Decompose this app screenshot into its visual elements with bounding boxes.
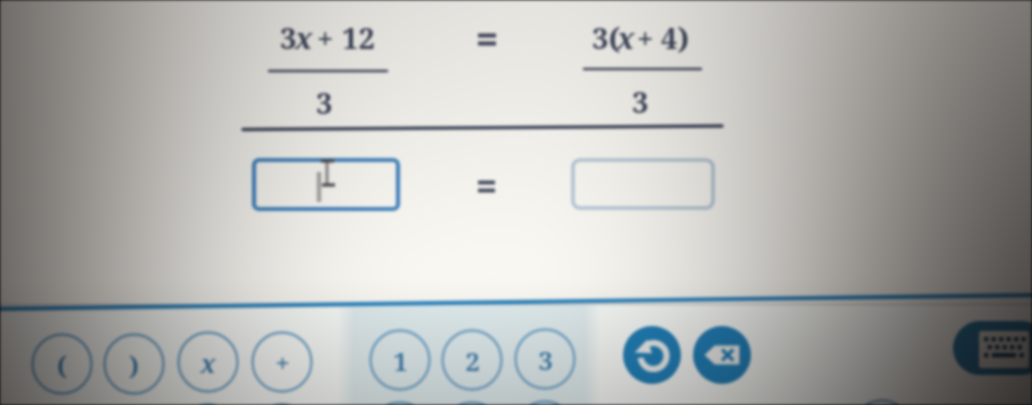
button[interactable]: ( — [31, 333, 93, 395]
staticText: 3( — [592, 18, 621, 57]
button[interactable] — [252, 158, 400, 211]
staticText: + — [317, 18, 334, 57]
button[interactable]: 1 — [369, 329, 431, 391]
staticText: x — [200, 345, 216, 380]
button[interactable] — [571, 158, 715, 210]
staticText: 4) — [661, 18, 690, 57]
staticText: ) — [129, 347, 139, 382]
button[interactable]: ) — [103, 333, 165, 395]
staticText: 3 — [316, 83, 333, 122]
staticText: 2 — [465, 343, 480, 378]
button[interactable]: 2 — [441, 329, 503, 391]
staticText: x — [295, 18, 313, 57]
button[interactable]: Backspace — [693, 326, 751, 384]
staticText: x — [617, 18, 635, 57]
button[interactable]: Undo — [623, 326, 681, 384]
staticText: + — [275, 345, 290, 380]
staticText: 12 — [342, 18, 375, 57]
staticText: 3 — [280, 18, 297, 57]
button[interactable]: 3 — [514, 328, 576, 390]
staticText: ( — [57, 347, 67, 382]
staticText: 3 — [538, 342, 553, 377]
button[interactable]: + — [251, 331, 313, 393]
staticText: + — [637, 18, 654, 57]
button[interactable]: x — [177, 331, 239, 393]
button[interactable]: Show keyboard — [953, 321, 1032, 375]
staticText: 3 — [632, 82, 649, 121]
staticText: 1 — [393, 343, 408, 378]
